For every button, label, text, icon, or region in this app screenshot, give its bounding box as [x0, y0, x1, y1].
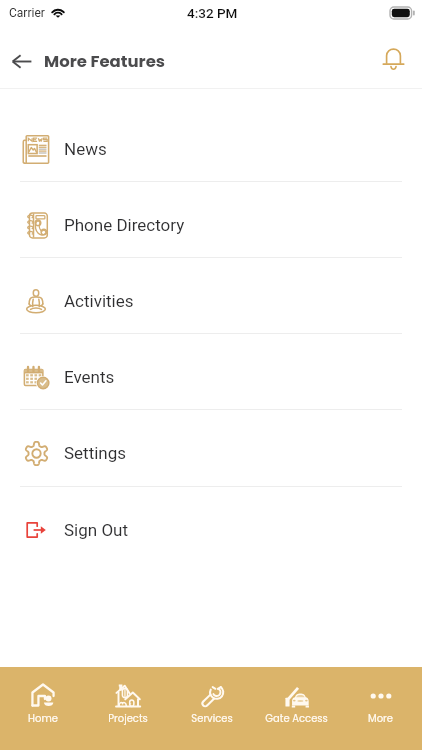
staticText: Home [28, 711, 58, 725]
button[interactable]: Home [0, 667, 85, 725]
staticText: 4:32 PM [187, 5, 238, 21]
staticText: Settings [64, 443, 127, 463]
button[interactable]: Activities [0, 258, 422, 334]
button[interactable]: Gate Access [254, 667, 338, 725]
staticText: Services [191, 711, 233, 725]
button[interactable]: More [338, 667, 422, 725]
staticText: More Features [44, 50, 166, 73]
button[interactable]: Sign Out [0, 487, 422, 563]
staticText: News [64, 139, 107, 159]
staticText: Phone Directory [64, 215, 185, 235]
button[interactable]: Phone Directory [0, 182, 422, 258]
button[interactable]: News [0, 106, 422, 182]
button[interactable]: Notifications [376, 42, 410, 76]
staticText: Gate Access [265, 711, 328, 725]
staticText: Projects [108, 711, 148, 725]
button[interactable]: Events [0, 334, 422, 410]
button[interactable]: Back [8, 47, 36, 75]
button[interactable]: Projects [85, 667, 170, 725]
staticText: Activities [64, 291, 134, 311]
button[interactable]: Settings [0, 410, 422, 487]
staticText: More [368, 711, 393, 725]
staticText: Events [64, 367, 115, 387]
button[interactable]: Services [170, 667, 254, 725]
staticText: Sign Out [64, 520, 129, 540]
staticText: Carrier [9, 6, 45, 20]
